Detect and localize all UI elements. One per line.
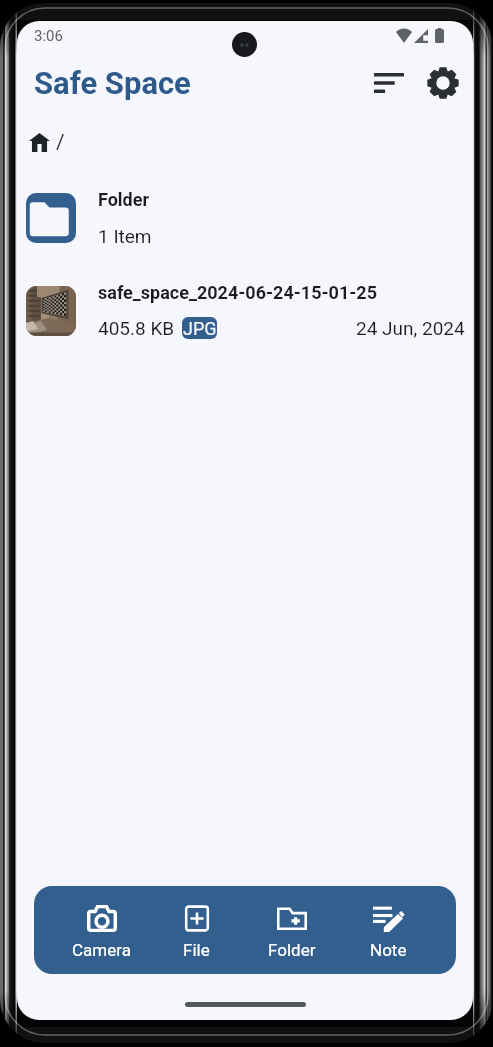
staticText: Folder xyxy=(98,189,150,210)
button[interactable]: Sort xyxy=(366,60,412,106)
staticText: Folder xyxy=(268,940,316,960)
button[interactable]: Note xyxy=(340,897,436,964)
staticText: 405.8 KB xyxy=(98,317,175,339)
button[interactable]: Folder xyxy=(244,897,340,964)
button[interactable]: Home xyxy=(24,127,55,158)
button[interactable]: safe_space_2024-06-24-15-01-25 xyxy=(17,264,473,357)
button[interactable]: Camera xyxy=(54,897,149,964)
staticText: 24 Jun, 2024 xyxy=(356,317,465,339)
staticText: / xyxy=(56,130,65,155)
staticText: 3:06 xyxy=(34,27,63,45)
staticText: Note xyxy=(370,940,407,960)
button[interactable]: Settings xyxy=(420,60,466,106)
staticText: Camera xyxy=(72,940,131,960)
staticText: Safe Space xyxy=(34,65,191,101)
button[interactable]: File xyxy=(149,897,244,964)
staticText: File xyxy=(183,940,210,960)
staticText: JPG xyxy=(183,318,217,339)
staticText: safe_space_2024-06-24-15-01-25 xyxy=(98,282,377,303)
staticText: 1 Item xyxy=(98,225,152,247)
button[interactable]: Folder xyxy=(17,171,473,264)
